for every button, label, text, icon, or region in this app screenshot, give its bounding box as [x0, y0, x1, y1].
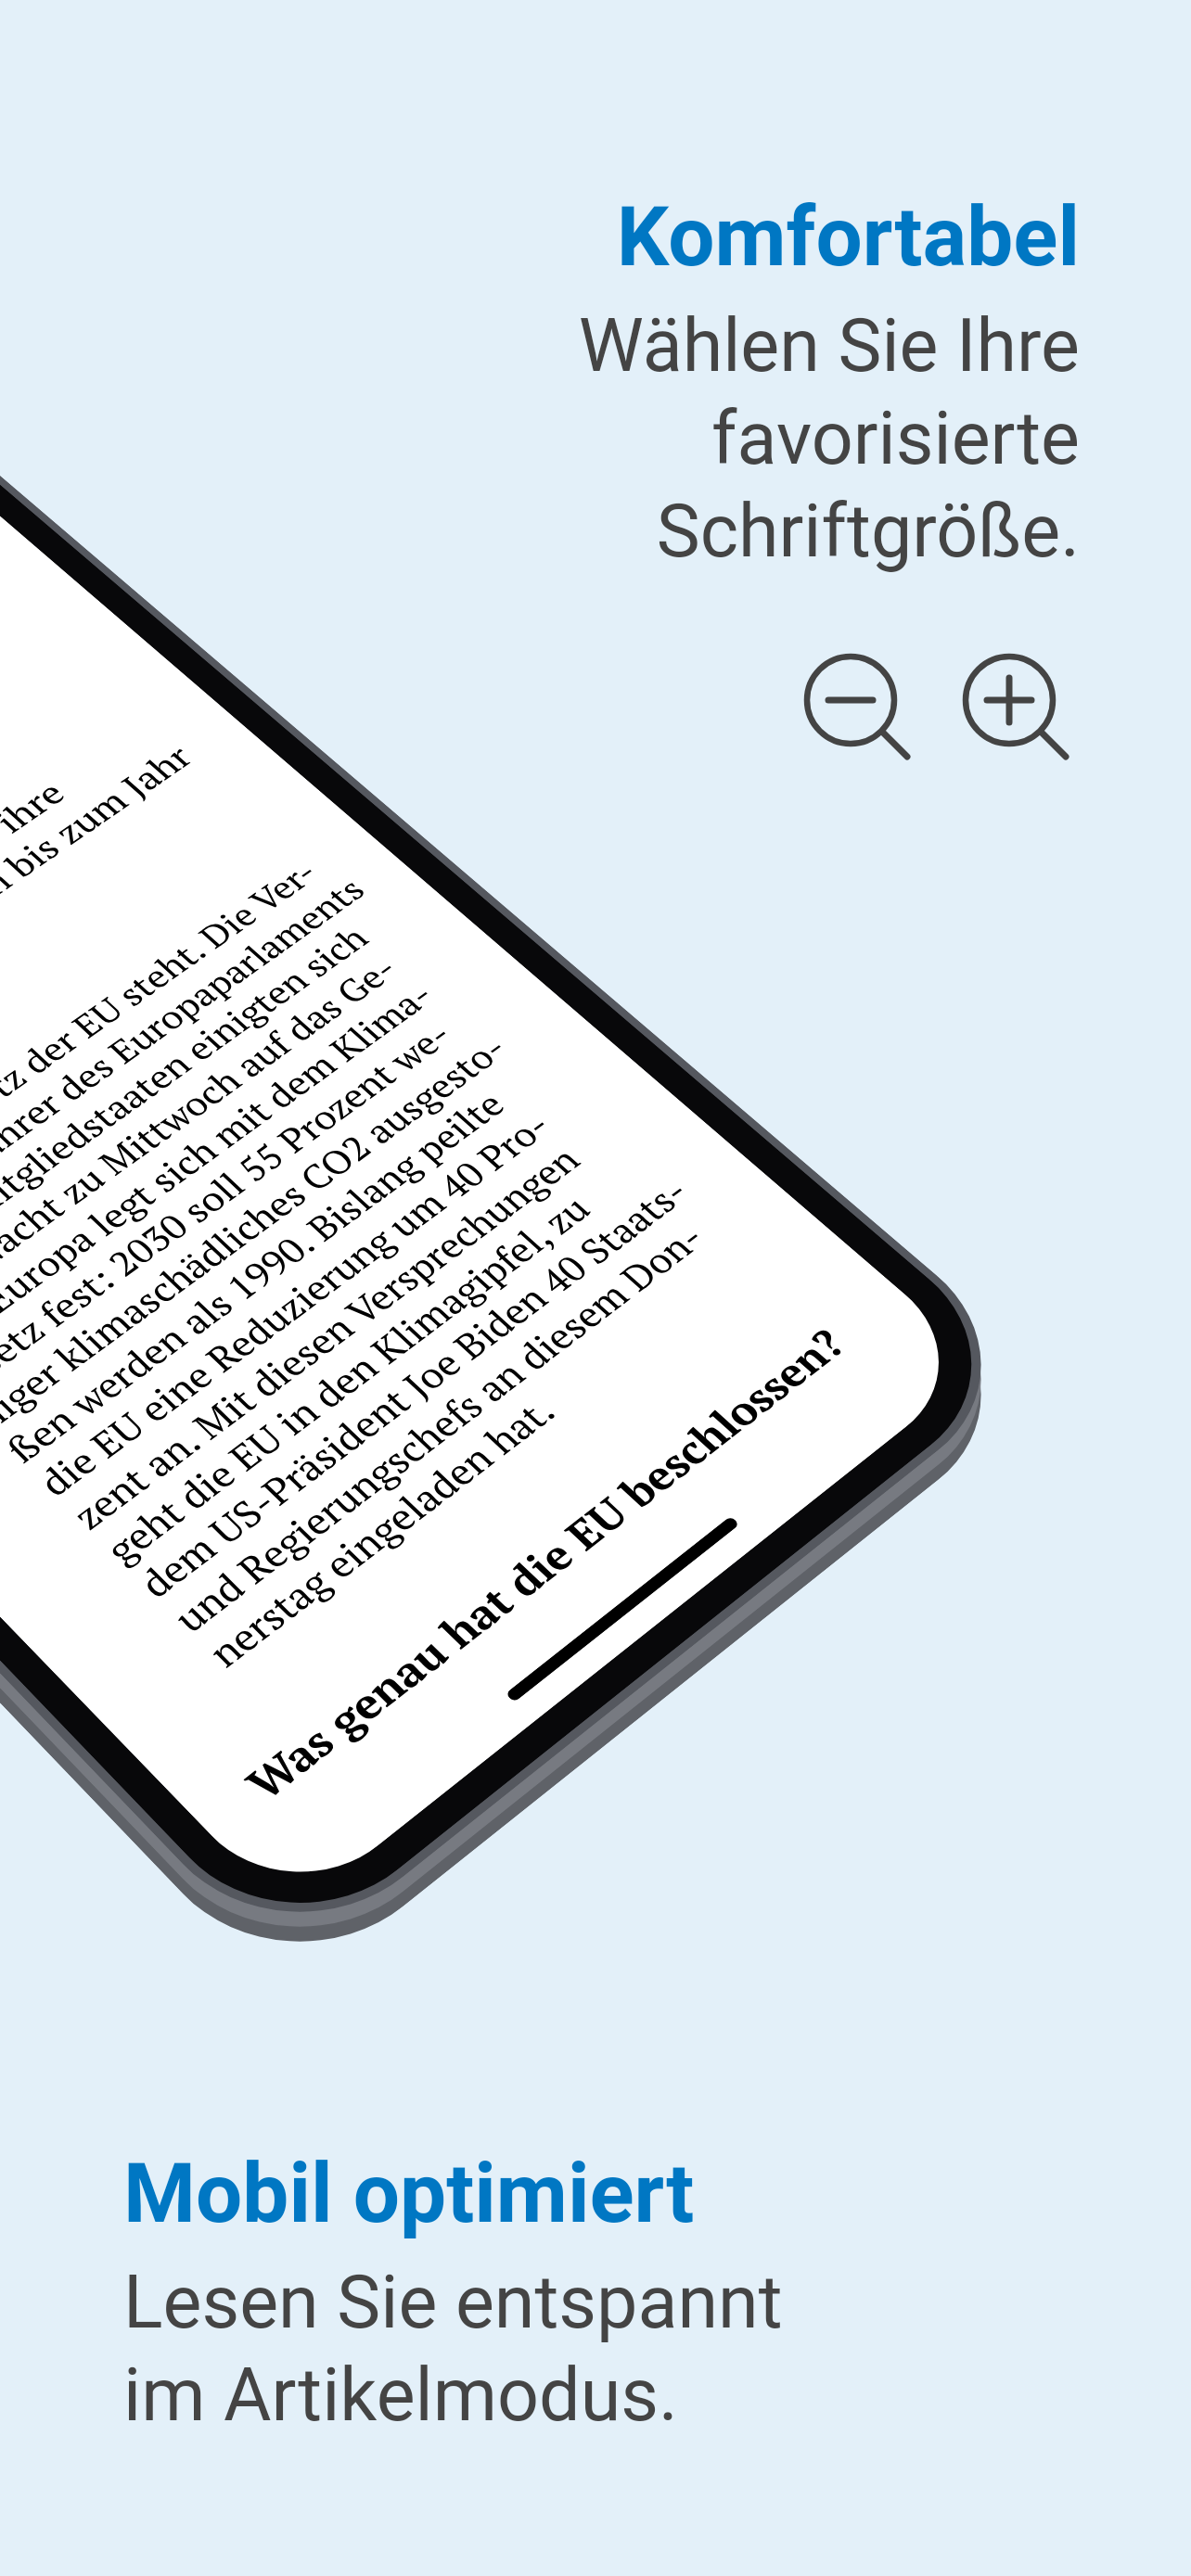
staticText: Lesen Sie entspannt im Artikelmodus. — [123, 2260, 783, 2438]
staticText: Komfortabel — [538, 188, 1080, 285]
button[interactable]: Decrease text size — [785, 635, 916, 767]
staticText: Wählen Sie Ihre favorisierte Schriftgröß… — [538, 303, 1080, 574]
staticText: Klimapolitik: So will die EU ihre Treibh… — [0, 708, 202, 1151]
staticText: Das Klimagesetz der EU steht. Die Ver- h… — [0, 841, 784, 1677]
button[interactable]: Increase text size — [943, 635, 1075, 767]
staticText: Mobil optimiert — [123, 2145, 695, 2241]
staticText: Was genau hat die EU beschlossen? — [233, 1317, 858, 1811]
